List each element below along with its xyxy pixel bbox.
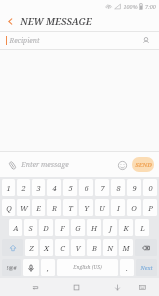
button[interactable]: B (87, 239, 101, 256)
staticText: Q (6, 203, 12, 213)
staticText: S (28, 223, 33, 233)
staticText: J (109, 223, 112, 233)
button[interactable]: 2 (17, 179, 30, 196)
button[interactable]: Z (25, 239, 38, 256)
staticText: V (75, 243, 81, 253)
staticText: Z (29, 243, 34, 253)
button[interactable]: J (103, 219, 117, 236)
button[interactable]: 0 (143, 179, 157, 196)
button[interactable]: 6 (79, 179, 93, 196)
staticText: L (140, 223, 145, 233)
staticText: O (131, 203, 137, 213)
button[interactable]: 5 (63, 179, 77, 196)
button[interactable]: SEND (132, 157, 154, 172)
staticText: 100% (123, 3, 138, 10)
staticText: 5 (68, 183, 73, 193)
button[interactable]: Backspace (135, 239, 157, 256)
button[interactable]: X (40, 239, 53, 256)
button[interactable]: Q (2, 199, 15, 216)
button[interactable]: N (103, 239, 117, 256)
staticText: F (60, 223, 65, 233)
staticText: H (91, 223, 97, 233)
staticText: I (117, 203, 120, 213)
button[interactable]: Emoji (115, 158, 129, 172)
staticText: N (107, 243, 113, 253)
button[interactable]: 8 (111, 179, 125, 196)
button[interactable]: U (95, 199, 109, 216)
button[interactable]: 9 (127, 179, 141, 196)
button[interactable]: E (32, 199, 45, 216)
button[interactable]: Y (79, 199, 93, 216)
staticText: 7 (100, 183, 105, 193)
button[interactable]: Back (0, 12, 20, 31)
button[interactable]: 1 (2, 179, 15, 196)
staticText: 1 (6, 183, 11, 193)
button[interactable]: S (24, 219, 37, 236)
staticText: X (44, 243, 49, 253)
staticText: 0 (148, 183, 153, 193)
staticText: 2 (21, 183, 26, 193)
button[interactable]: Home (68, 279, 84, 295)
button[interactable]: O (127, 199, 141, 216)
button[interactable]: D (39, 219, 53, 236)
button[interactable]: M (119, 239, 133, 256)
staticText: 3 (36, 183, 41, 193)
button[interactable]: English (US) (57, 259, 118, 276)
button[interactable]: !@# (2, 259, 21, 276)
button[interactable]: K (119, 219, 133, 236)
staticText: NEW MESSAGE (20, 15, 92, 28)
button[interactable]: V (71, 239, 85, 256)
staticText: Next (140, 264, 153, 271)
button[interactable]: . (120, 259, 134, 276)
button[interactable]: 7 (95, 179, 109, 196)
staticText: W (20, 203, 28, 213)
staticText: Recipient (9, 36, 40, 46)
staticText: !@# (6, 264, 17, 271)
staticText: Y (84, 203, 89, 213)
button[interactable]: C (55, 239, 69, 256)
button[interactable]: Next (136, 259, 157, 276)
button[interactable]: H (87, 219, 101, 236)
button[interactable]: Attach file (5, 158, 19, 172)
button[interactable]: G (71, 219, 85, 236)
staticText: E (36, 203, 41, 213)
staticText: English (US) (73, 264, 102, 271)
button[interactable]: P (143, 199, 157, 216)
button[interactable]: Shift (2, 239, 23, 256)
button[interactable]: W (17, 199, 30, 216)
staticText: C (60, 243, 65, 253)
staticText: R (52, 203, 57, 213)
button[interactable]: , (41, 259, 55, 276)
staticText: K (123, 223, 129, 233)
button[interactable]: 3 (32, 179, 45, 196)
button[interactable]: I (111, 199, 125, 216)
button[interactable]: L (135, 219, 149, 236)
staticText: T (68, 203, 73, 213)
button[interactable]: Recent apps (27, 279, 43, 295)
button[interactable]: 4 (47, 179, 61, 196)
button[interactable]: A (9, 219, 22, 236)
staticText: 8 (116, 183, 121, 193)
button[interactable]: T (63, 199, 77, 216)
button[interactable]: Switch keyboard (134, 279, 150, 295)
button[interactable]: F (55, 219, 69, 236)
staticText: M (122, 243, 130, 253)
staticText: Enter message (21, 160, 69, 170)
staticText: A (13, 223, 19, 233)
button[interactable]: Voice input (23, 259, 39, 276)
staticText: P (148, 203, 153, 213)
staticText: D (43, 223, 49, 233)
staticText: B (92, 243, 97, 253)
staticText: . (126, 263, 128, 273)
button[interactable]: Add recipient from contacts (139, 34, 153, 48)
staticText: SEND (135, 161, 152, 169)
staticText: , (47, 263, 49, 273)
staticText: 4 (52, 183, 57, 193)
staticText: 7:00 (145, 3, 156, 10)
staticText: 6 (84, 183, 89, 193)
button[interactable]: Hide keyboard (109, 279, 125, 295)
staticText: G (75, 223, 81, 233)
staticText: 9 (132, 183, 137, 193)
staticText: U (99, 203, 105, 213)
button[interactable]: R (47, 199, 61, 216)
